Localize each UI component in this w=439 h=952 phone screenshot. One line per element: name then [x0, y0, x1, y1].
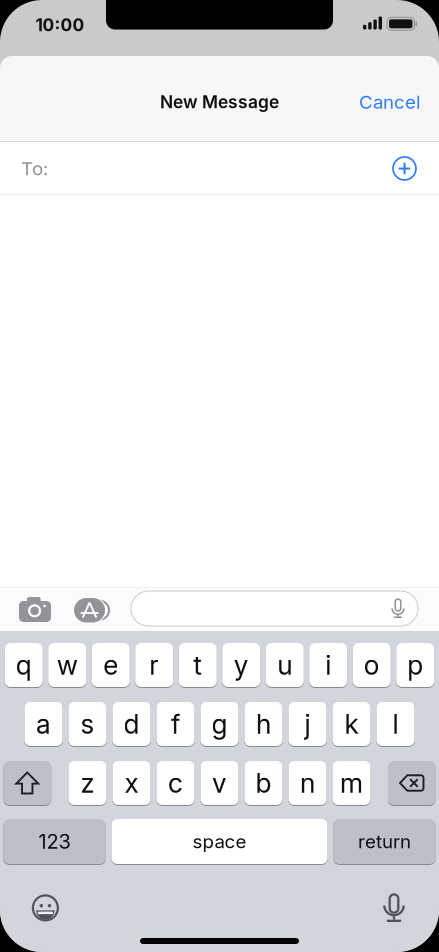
button[interactable]: c — [156, 761, 194, 805]
staticText: t — [193, 649, 202, 681]
staticText: c — [168, 767, 183, 799]
button[interactable]: b — [244, 761, 282, 805]
button[interactable]: z — [68, 761, 106, 805]
staticText: d — [123, 708, 139, 740]
staticText: b — [255, 767, 271, 799]
button[interactable]: Emoji — [32, 894, 59, 921]
button[interactable]: Shift — [3, 761, 51, 805]
staticText: y — [234, 649, 249, 681]
staticText: a — [36, 708, 51, 740]
button[interactable]: Dictation — [383, 894, 405, 923]
button[interactable]: g — [200, 702, 238, 746]
button[interactable]: s — [68, 702, 106, 746]
button[interactable]: i — [309, 643, 347, 687]
staticText: j — [304, 708, 310, 740]
button[interactable]: Camera — [19, 597, 51, 622]
button[interactable]: q — [5, 643, 43, 687]
button[interactable]: l — [376, 702, 414, 746]
staticText: u — [277, 649, 292, 681]
button[interactable]: Delete — [388, 761, 435, 805]
staticText: To: — [21, 157, 48, 179]
button[interactable]: h — [244, 702, 282, 746]
staticText: w — [57, 649, 78, 681]
staticText: s — [80, 708, 94, 740]
button[interactable]: j — [288, 702, 326, 746]
button[interactable]: p — [396, 643, 434, 687]
staticText: m — [340, 767, 363, 799]
staticText: n — [300, 767, 315, 799]
button[interactable]: v — [200, 761, 238, 805]
staticText: k — [344, 708, 358, 740]
staticText: 123 — [38, 830, 70, 853]
button[interactable]: Add Contact — [386, 150, 422, 186]
button[interactable]: 123 — [3, 819, 105, 864]
staticText: h — [256, 708, 271, 740]
button[interactable]: r — [135, 643, 173, 687]
button[interactable]: e — [92, 643, 130, 687]
staticText: e — [103, 649, 118, 681]
staticText: space — [192, 830, 246, 852]
button[interactable]: u — [266, 643, 304, 687]
staticText: g — [211, 708, 227, 740]
button[interactable]: To — [0, 142, 386, 195]
button[interactable]: Dictate — [391, 599, 405, 618]
staticText: v — [212, 767, 227, 799]
button[interactable]: Cancel — [359, 91, 421, 113]
button[interactable]: n — [288, 761, 326, 805]
staticText: f — [171, 708, 180, 740]
staticText: New Message — [160, 92, 279, 112]
button[interactable]: o — [353, 643, 391, 687]
button[interactable]: Apps — [74, 598, 112, 622]
button[interactable]: f — [156, 702, 194, 746]
staticText: i — [325, 649, 331, 681]
staticText: r — [149, 649, 159, 681]
button[interactable]: d — [112, 702, 150, 746]
button[interactable]: y — [222, 643, 260, 687]
button[interactable]: t — [179, 643, 217, 687]
button[interactable]: space — [111, 819, 327, 864]
button[interactable]: return — [333, 819, 435, 864]
button[interactable]: Message field — [131, 591, 418, 626]
button[interactable]: k — [332, 702, 370, 746]
staticText: o — [364, 649, 380, 681]
button[interactable]: a — [24, 702, 62, 746]
button[interactable]: w — [48, 643, 86, 687]
button[interactable]: x — [112, 761, 150, 805]
staticText: Cancel — [359, 91, 421, 113]
staticText: z — [80, 767, 94, 799]
button[interactable]: m — [332, 761, 370, 805]
staticText: x — [124, 767, 138, 799]
staticText: return — [358, 830, 411, 852]
staticText: l — [392, 708, 398, 740]
staticText: p — [407, 649, 423, 681]
staticText: 10:00 — [35, 15, 84, 35]
staticText: q — [16, 649, 32, 681]
